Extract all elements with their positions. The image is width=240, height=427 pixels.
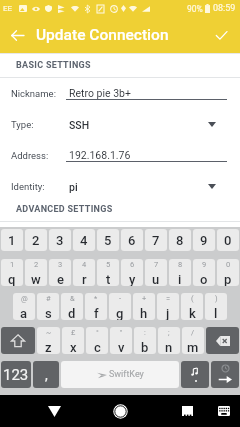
button[interactable]: ;	[158, 327, 180, 354]
staticText: @	[21, 294, 28, 303]
button[interactable]: ,	[33, 361, 59, 388]
button[interactable]: =	[157, 293, 179, 320]
button[interactable]: 9	[193, 229, 215, 251]
button[interactable]: )	[205, 293, 227, 320]
button[interactable]: Shift	[1, 327, 35, 354]
button[interactable]: ~	[37, 327, 60, 354]
staticText: 5	[106, 260, 111, 269]
staticText: Address:	[11, 150, 49, 161]
staticText: 9	[202, 260, 207, 269]
button[interactable]: 6	[121, 229, 143, 251]
staticText: 2	[34, 260, 39, 269]
button[interactable]: 4	[73, 259, 95, 286]
button[interactable]: 2	[25, 229, 47, 251]
button[interactable]: £	[62, 327, 84, 354]
staticText: 0	[224, 233, 232, 248]
staticText: x	[70, 340, 77, 354]
button[interactable]: :	[134, 327, 156, 354]
staticText: -	[119, 294, 122, 303]
button[interactable]: 1	[1, 259, 23, 286]
button[interactable]: (	[181, 293, 203, 320]
other: Emoji	[191, 368, 200, 382]
button[interactable]: +	[133, 293, 155, 320]
button[interactable]: 7	[145, 229, 167, 251]
button[interactable]: Navigate up	[0, 18, 34, 52]
button[interactable]: #	[37, 293, 59, 320]
staticText: 08:59	[213, 3, 236, 14]
button[interactable]: 0	[217, 229, 239, 251]
button[interactable]: 2	[25, 259, 47, 286]
button[interactable]: SwiftKey	[61, 361, 179, 388]
staticText: v	[118, 340, 125, 354]
staticText: 1	[10, 260, 15, 269]
button[interactable]: 8	[169, 229, 191, 251]
staticText: 4	[82, 260, 87, 269]
button[interactable]: 8	[169, 259, 191, 286]
button[interactable]: Nickname:	[0, 78, 240, 109]
button[interactable]: 3	[49, 229, 71, 251]
button[interactable]: Save	[204, 18, 238, 52]
other: Backspace	[216, 336, 230, 346]
button[interactable]: Back	[41, 398, 67, 424]
staticText: u	[152, 272, 160, 286]
button[interactable]: Enter	[211, 361, 239, 388]
staticText: l	[214, 306, 218, 320]
button[interactable]: 6	[121, 259, 143, 286]
button[interactable]: Type:	[0, 109, 240, 140]
staticText: +	[142, 294, 147, 303]
staticText: 5	[104, 233, 112, 248]
button[interactable]: @	[13, 293, 35, 320]
staticText: c	[94, 340, 101, 354]
button[interactable]: /	[182, 327, 204, 354]
button[interactable]: *	[85, 293, 107, 320]
button[interactable]: &	[61, 293, 83, 320]
staticText: "	[120, 328, 123, 337]
staticText: =	[166, 294, 171, 303]
staticText: ~	[46, 328, 52, 337]
button[interactable]: 5	[97, 229, 119, 251]
button[interactable]: Emoji	[181, 361, 209, 388]
staticText: 6	[128, 233, 136, 248]
staticText: EE	[3, 4, 13, 13]
staticText: 1	[8, 233, 16, 248]
button[interactable]: 3	[49, 259, 71, 286]
staticText: e	[57, 272, 64, 286]
button[interactable]: Home	[107, 398, 133, 424]
staticText: q	[8, 272, 16, 286]
button[interactable]: Address:	[0, 140, 240, 171]
staticText: t	[106, 272, 111, 286]
button[interactable]: 5	[97, 259, 119, 286]
staticText: °	[96, 328, 99, 337]
staticText: i	[178, 272, 182, 286]
staticText: k	[189, 306, 196, 320]
staticText: r	[82, 272, 87, 286]
button[interactable]: Identity:	[0, 171, 240, 202]
staticText: m	[187, 340, 199, 354]
button[interactable]: Switch keyboard	[211, 398, 237, 424]
staticText: d	[68, 306, 76, 320]
button[interactable]: 1	[1, 229, 23, 251]
staticText: 3	[56, 233, 64, 248]
staticText: SSH	[69, 119, 90, 131]
staticText: &	[70, 294, 75, 303]
button[interactable]: Recent apps	[174, 398, 200, 424]
button[interactable]: 4	[73, 229, 95, 251]
staticText: SwiftKey	[109, 369, 144, 380]
button[interactable]: 9	[193, 259, 215, 286]
staticText: 6	[130, 260, 135, 269]
button[interactable]: Backspace	[206, 327, 239, 354]
staticText: 8	[176, 233, 184, 248]
staticText: 9	[200, 233, 208, 248]
button[interactable]: 7	[145, 259, 167, 286]
button[interactable]: 0	[217, 259, 239, 286]
staticText: #	[46, 294, 51, 303]
button[interactable]: °	[86, 327, 108, 354]
staticText: ,	[45, 367, 48, 383]
staticText: 90%	[187, 4, 203, 14]
staticText: ADVANCED SETTINGS	[16, 204, 113, 215]
button[interactable]: "	[110, 327, 132, 354]
button[interactable]: 123	[1, 361, 31, 388]
staticText: 192.168.1.76	[69, 149, 131, 161]
staticText: Nickname:	[11, 88, 56, 99]
button[interactable]: -	[109, 293, 131, 320]
